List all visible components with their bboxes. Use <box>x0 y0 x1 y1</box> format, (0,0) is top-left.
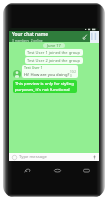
staticText: Test User 1 joined the group <box>27 50 81 55</box>
button[interactable]: Recents <box>80 164 92 176</box>
button[interactable]: Your chat name <box>9 31 99 42</box>
staticText: Hi! How are you doing? <box>24 72 70 78</box>
button[interactable]: Back <box>21 164 33 176</box>
staticText: June 17 <box>47 43 61 48</box>
button[interactable]: Voice message <box>91 154 97 160</box>
button[interactable]: Home <box>51 164 63 176</box>
staticText: Your chat name <box>12 31 49 38</box>
button[interactable]: Emoji <box>11 154 17 160</box>
staticText: Test User 1 <box>24 65 43 70</box>
staticText: Type message <box>19 154 47 160</box>
staticText: 10:20 <box>70 70 76 78</box>
button[interactable]: More options <box>90 31 99 43</box>
staticText: This preview is only for styling purpose… <box>15 81 75 92</box>
button[interactable]: Attach <box>80 32 89 41</box>
staticText: 3 members, 2 online <box>12 39 43 42</box>
staticText: Test User 2 joined the group <box>27 58 81 63</box>
